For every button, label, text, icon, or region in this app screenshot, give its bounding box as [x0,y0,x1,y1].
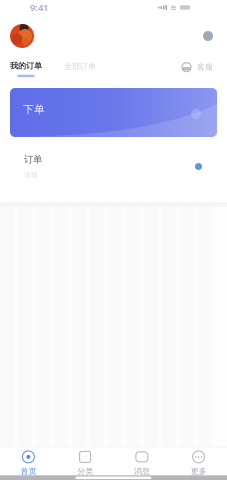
button[interactable]: 我的订单 [10,61,42,77]
button[interactable]: 全部订单 [42,61,96,77]
staticText: 分类 [77,466,93,476]
button[interactable]: 下单 [10,88,217,137]
button[interactable]: Profile [10,24,34,48]
staticText: 订单 [24,154,42,165]
staticText: 我的订单 [10,61,42,71]
staticText: 更多 [191,466,207,476]
button[interactable]: 更多 [170,450,227,476]
button[interactable]: 消息 [113,450,170,476]
button[interactable]: 订单 [0,137,227,196]
staticText: 全部订单 [64,61,96,71]
staticText: 详情 [24,171,38,179]
staticText: 首页 [20,466,36,476]
button[interactable]: 分类 [57,450,114,476]
staticText: 9:41 [30,1,48,14]
staticText: 客服 [197,62,213,72]
staticText: 消息 [134,466,150,476]
staticText: 下单 [23,103,45,116]
button[interactable]: Settings [198,26,218,46]
button[interactable]: 首页 [0,450,57,476]
button[interactable]: 客服 [181,62,213,77]
staticText: ≋ [170,3,177,12]
